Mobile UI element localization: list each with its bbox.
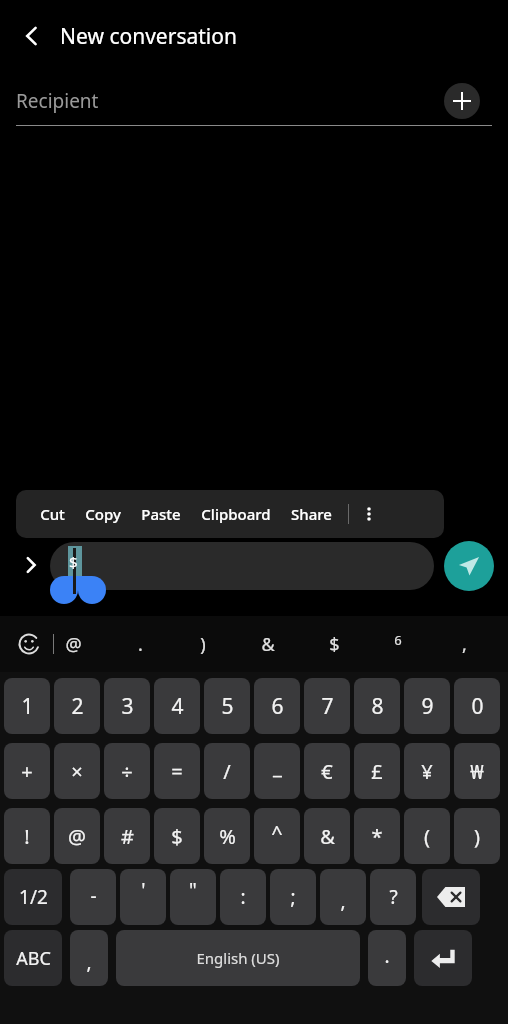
staticText: ;	[290, 884, 296, 910]
button[interactable]: *	[354, 808, 400, 864]
button[interactable]: 1/2	[4, 869, 62, 925]
staticText: (	[424, 823, 430, 850]
button[interactable]: £	[354, 743, 400, 799]
button[interactable]: ×	[54, 743, 100, 799]
button[interactable]: 9	[404, 678, 450, 734]
button[interactable]: 6	[254, 678, 300, 734]
button[interactable]: "	[170, 869, 216, 925]
staticText: ×	[71, 758, 83, 785]
button[interactable]: ?	[370, 869, 416, 925]
staticText: 3	[121, 692, 134, 721]
button[interactable]: 4	[154, 678, 200, 734]
staticText: New conversation	[60, 22, 237, 51]
button[interactable]: Enter	[414, 930, 472, 986]
button[interactable]: Back	[12, 16, 52, 56]
staticText: 6	[271, 692, 284, 721]
staticText: 1/2	[19, 884, 48, 910]
staticText: )	[474, 823, 480, 850]
staticText: =	[171, 758, 183, 785]
button[interactable]: 8	[354, 678, 400, 734]
button[interactable]: #	[104, 808, 150, 864]
staticText: .	[138, 632, 143, 657]
button[interactable]: €	[304, 743, 350, 799]
button[interactable]: ₩	[454, 743, 500, 799]
button[interactable]: Share	[281, 490, 342, 538]
button[interactable]: .	[118, 616, 162, 672]
button[interactable]: -	[70, 869, 116, 925]
staticText: 2	[71, 692, 84, 721]
staticText: Cut	[40, 504, 65, 524]
staticText: :	[240, 884, 246, 910]
staticText: 8	[371, 692, 384, 721]
staticText: Paste	[141, 504, 181, 524]
button[interactable]: )	[181, 616, 225, 672]
button[interactable]: (	[404, 808, 450, 864]
staticText: /	[223, 758, 231, 785]
button[interactable]: Clipboard	[191, 490, 281, 538]
button[interactable]: 1	[4, 678, 50, 734]
button[interactable]: ,	[320, 869, 366, 925]
button[interactable]: Emoji	[8, 616, 50, 672]
staticText: $	[69, 552, 78, 572]
staticText: 6	[394, 631, 402, 649]
button[interactable]: Add recipient	[444, 83, 480, 119]
button[interactable]: @	[54, 808, 100, 864]
button[interactable]	[50, 542, 434, 590]
button[interactable]: +	[4, 743, 50, 799]
staticText: €	[321, 758, 333, 785]
staticText: ,	[86, 949, 92, 975]
button[interactable]: Cut	[30, 490, 75, 538]
button[interactable]: English (US)	[116, 930, 360, 986]
staticText: 9	[421, 692, 434, 721]
staticText: "	[189, 877, 197, 903]
button[interactable]: Paste	[131, 490, 191, 538]
button[interactable]: ABC	[4, 930, 62, 986]
staticText: %	[219, 823, 236, 850]
button[interactable]: ÷	[104, 743, 150, 799]
staticText: 0	[471, 692, 484, 721]
button[interactable]: %	[204, 808, 250, 864]
button[interactable]: $	[312, 616, 356, 672]
staticText: Copy	[85, 504, 121, 524]
staticText: *	[371, 823, 383, 850]
button[interactable]: Backspace	[422, 869, 480, 925]
button[interactable]: ¥	[404, 743, 450, 799]
staticText: 5	[221, 692, 234, 721]
button[interactable]: 2	[54, 678, 100, 734]
button[interactable]: $	[154, 808, 200, 864]
staticText: ,	[462, 632, 467, 657]
staticText: )	[200, 632, 206, 657]
button[interactable]: _	[254, 743, 300, 799]
button[interactable]: Recipient	[0, 76, 508, 126]
button[interactable]: /	[204, 743, 250, 799]
button[interactable]: ^	[254, 808, 300, 864]
button[interactable]: =	[154, 743, 200, 799]
button[interactable]: @	[51, 616, 95, 672]
staticText: ?	[389, 884, 398, 910]
staticText: +	[21, 758, 33, 785]
button[interactable]: More options	[349, 490, 389, 538]
button[interactable]: 6	[376, 616, 420, 672]
staticText: !	[24, 823, 30, 850]
staticText: @	[65, 632, 82, 657]
button[interactable]: &	[246, 616, 290, 672]
button[interactable]: &	[304, 808, 350, 864]
button[interactable]: 7	[304, 678, 350, 734]
button[interactable]: 3	[104, 678, 150, 734]
button[interactable]: ,	[442, 616, 486, 672]
staticText: ,	[340, 888, 346, 914]
button[interactable]: '	[120, 869, 166, 925]
button[interactable]: 5	[204, 678, 250, 734]
button[interactable]: ,	[70, 930, 108, 986]
button[interactable]: Send	[444, 541, 494, 591]
button[interactable]: ;	[270, 869, 316, 925]
button[interactable]: .	[368, 930, 406, 986]
button[interactable]: !	[4, 808, 50, 864]
button[interactable]: 0	[454, 678, 500, 734]
staticText: Share	[291, 504, 332, 524]
button[interactable]: )	[454, 808, 500, 864]
staticText: ABC	[16, 946, 51, 971]
button[interactable]: :	[220, 869, 266, 925]
button[interactable]: Copy	[75, 490, 131, 538]
button[interactable]: Expand	[14, 548, 48, 582]
